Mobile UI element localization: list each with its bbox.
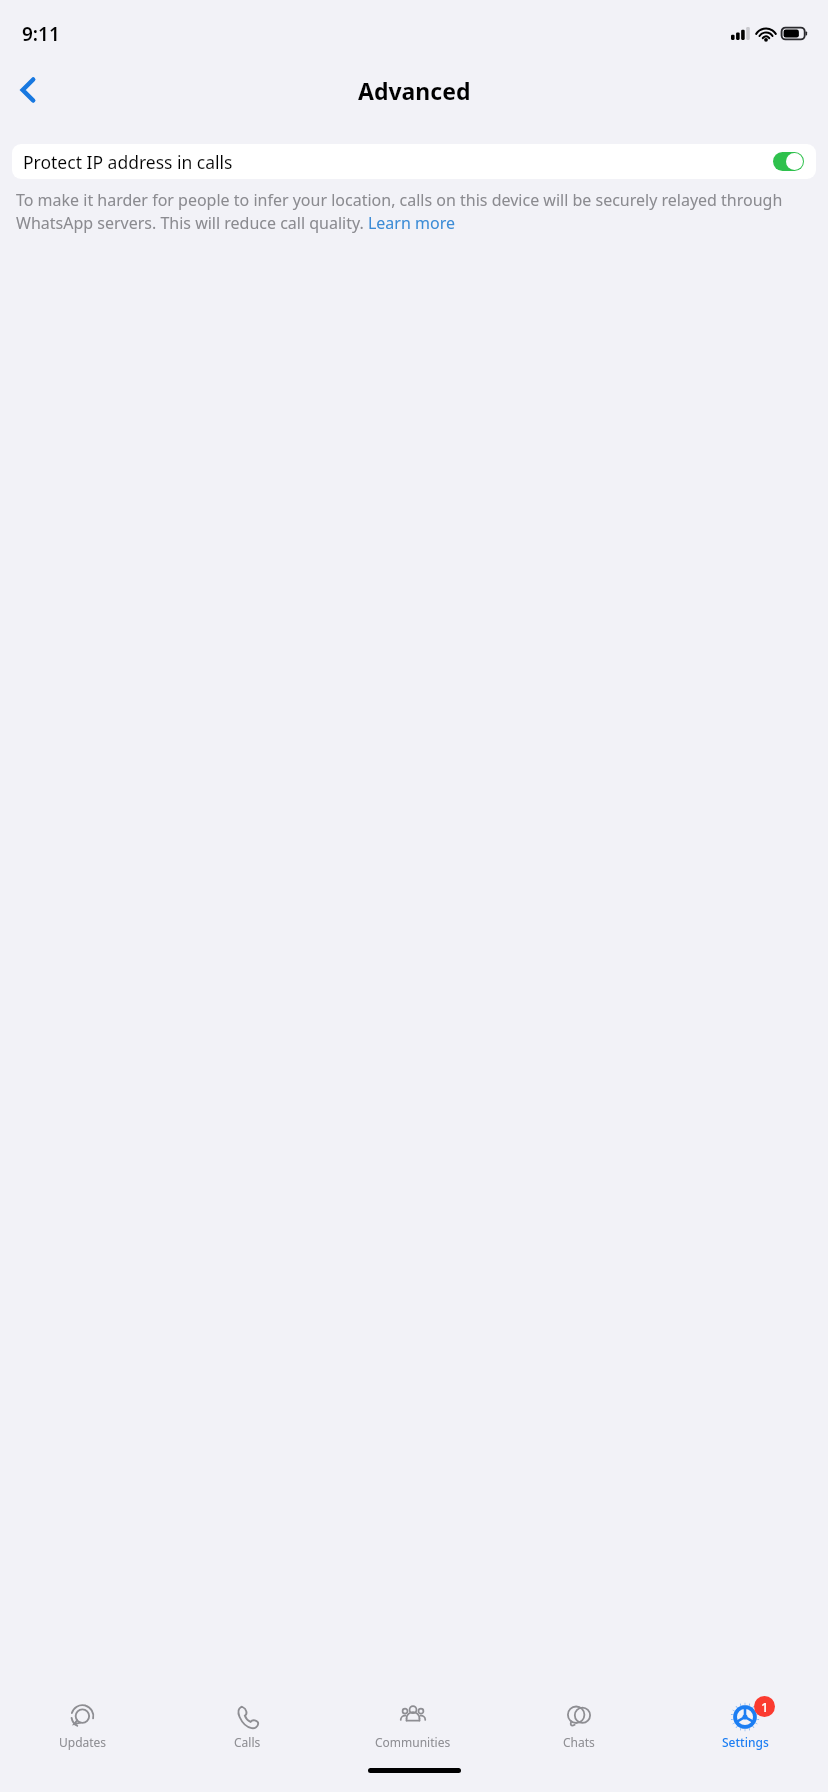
staticText: Communities <box>375 1734 451 1750</box>
button[interactable]: Updates <box>0 1696 165 1764</box>
staticText: Updates <box>59 1734 107 1750</box>
staticText: Chats <box>563 1734 595 1750</box>
staticText: 1 <box>761 1698 769 1716</box>
button[interactable]: Chats <box>496 1696 662 1764</box>
button[interactable]: Protect IP address in calls toggle <box>773 152 804 171</box>
staticText: Advanced <box>358 75 471 106</box>
button[interactable]: 1 <box>662 1696 828 1764</box>
button[interactable]: To make it harder for people to infer yo… <box>16 189 812 234</box>
button[interactable]: Protect IP address in calls <box>12 144 816 179</box>
button[interactable]: Communities <box>330 1696 496 1764</box>
staticText: To make it harder for people to infer yo… <box>16 189 812 234</box>
staticText: Protect IP address in calls <box>23 150 773 174</box>
staticText: Calls <box>234 1734 261 1750</box>
staticText: 9:11 <box>22 21 60 47</box>
staticText: Settings <box>722 1734 769 1750</box>
button[interactable]: Calls <box>165 1696 330 1764</box>
button[interactable]: Back <box>4 67 50 113</box>
